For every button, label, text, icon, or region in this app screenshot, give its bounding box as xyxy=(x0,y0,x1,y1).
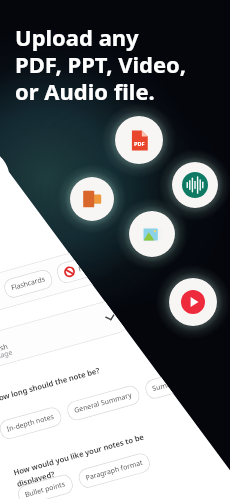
staticText: Paragraph format xyxy=(84,458,144,483)
staticText: Neither xyxy=(77,258,104,274)
staticText: Bullet points xyxy=(24,479,67,499)
staticText: Upload any PDF, PPT, Video, or Audio fil… xyxy=(15,22,187,106)
button[interactable]: Notes xyxy=(0,238,132,320)
staticText: English xyxy=(0,342,9,358)
button[interactable]: Neither xyxy=(55,251,112,285)
button[interactable]: PowerPoint file xyxy=(70,177,114,221)
staticText: PDF xyxy=(134,140,145,147)
button[interactable]: Flashcards xyxy=(2,268,55,300)
staticText: How would you like your notes to be xyxy=(12,432,145,477)
staticText: displayed? xyxy=(15,469,56,489)
button[interactable]: General Summary xyxy=(65,383,142,422)
staticText: How long should the note be? xyxy=(0,365,102,404)
button[interactable]: Image file xyxy=(129,211,175,257)
button[interactable]: Audio file xyxy=(172,162,218,208)
staticText: Summary xyxy=(151,376,185,394)
button[interactable]: PDF file xyxy=(115,116,163,164)
button[interactable]: In-depth notes xyxy=(0,405,64,441)
staticText: Language xyxy=(0,348,14,366)
staticText: In-depth notes xyxy=(6,412,55,434)
button[interactable]: Notes xyxy=(0,282,1,311)
staticText: General Summary xyxy=(73,390,134,416)
button[interactable]: Summary xyxy=(143,369,193,401)
button[interactable]: Video file xyxy=(169,278,217,326)
button[interactable]: Paragraph format xyxy=(76,451,152,490)
staticText: Flashcards xyxy=(10,274,46,293)
button[interactable]: Bullet points xyxy=(16,473,75,499)
button[interactable]: English xyxy=(0,296,132,372)
